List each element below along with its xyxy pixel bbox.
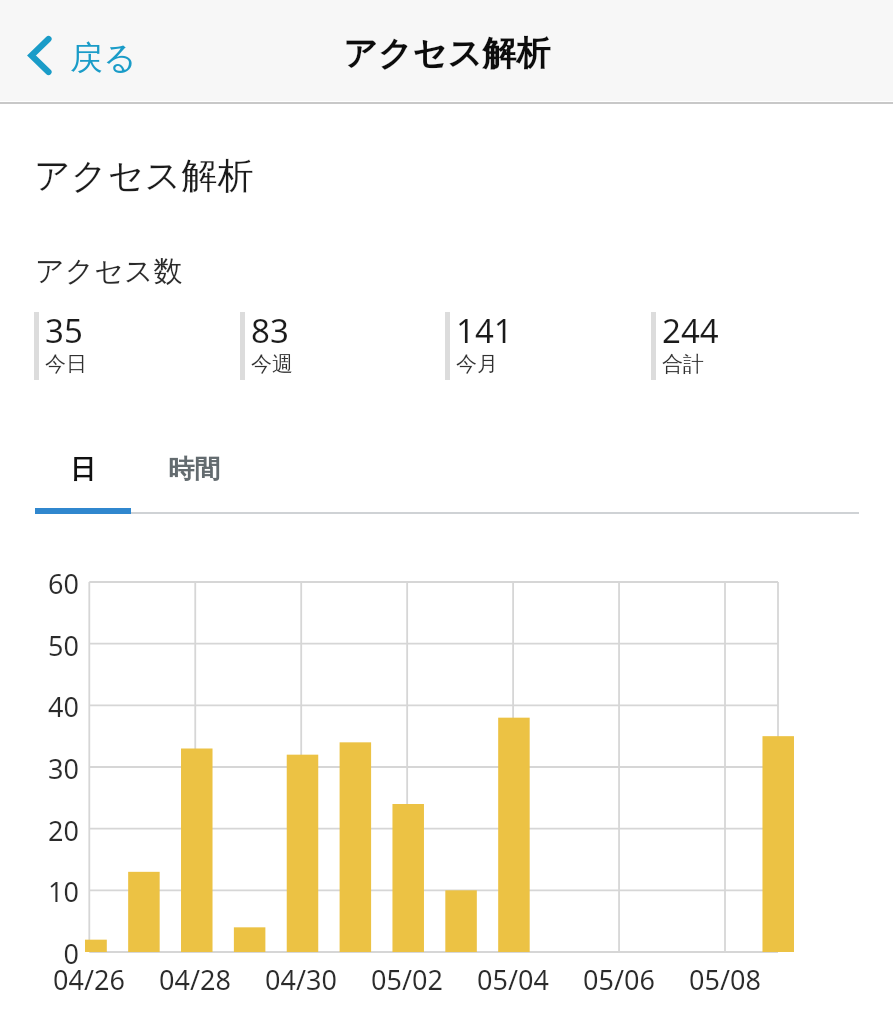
staticText: 04/28 — [135, 961, 255, 998]
staticText: 時間 — [168, 453, 220, 486]
staticText: アクセス数 — [35, 253, 183, 290]
staticText: 50 — [20, 627, 79, 664]
button[interactable]: 時間 — [131, 434, 257, 504]
staticText: 04/26 — [29, 961, 149, 998]
button[interactable]: 244 — [651, 306, 851, 384]
staticText: 05/02 — [347, 961, 467, 998]
button[interactable]: 141 — [445, 306, 645, 384]
staticText: 今月 — [456, 351, 498, 377]
button[interactable]: 日 — [35, 434, 131, 504]
staticText: 戻る — [70, 37, 137, 79]
staticText: 今日 — [45, 351, 87, 377]
staticText: 35 — [45, 308, 83, 353]
staticText: 日 — [70, 453, 96, 486]
staticText: 今週 — [251, 351, 293, 377]
staticText: 83 — [251, 308, 289, 353]
staticText: 60 — [20, 565, 79, 602]
staticText: 10 — [20, 873, 79, 910]
staticText: アクセス解析 — [34, 153, 254, 198]
staticText: 20 — [20, 812, 79, 849]
staticText: 合計 — [662, 351, 704, 377]
staticText: 05/08 — [665, 961, 785, 998]
staticText: 141 — [456, 308, 513, 353]
button[interactable]: 83 — [240, 306, 440, 384]
staticText: 0 — [20, 935, 79, 972]
staticText: アクセス解析 — [343, 32, 551, 75]
staticText: 05/04 — [453, 961, 573, 998]
staticText: 244 — [662, 308, 719, 353]
staticText: 04/30 — [241, 961, 361, 998]
staticText: 05/06 — [559, 961, 679, 998]
staticText: 30 — [20, 750, 79, 787]
staticText: 40 — [20, 688, 79, 725]
button[interactable]: 35 — [34, 306, 234, 384]
button[interactable]: 戻る / Back — [18, 22, 149, 88]
